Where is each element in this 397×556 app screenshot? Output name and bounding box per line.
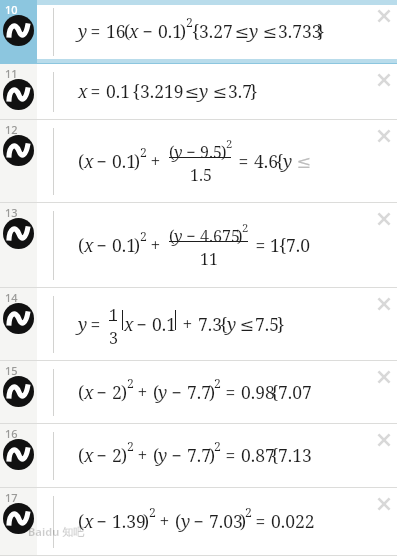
staticText: 7.7 (187, 380, 211, 404)
staticText: Baidu 知吧 (28, 524, 85, 539)
button[interactable] (0, 488, 37, 556)
button[interactable]: Toggle graph visibility (3, 376, 34, 407)
staticText: 7.13 (278, 443, 312, 467)
staticText: 3.733 (278, 19, 322, 43)
button[interactable] (0, 288, 37, 361)
staticText: ) (209, 443, 216, 467)
staticText: 0.1 (112, 149, 136, 173)
button[interactable]: Toggle graph visibility (3, 15, 34, 46)
staticText: 2 (242, 220, 249, 235)
button[interactable] (0, 120, 37, 203)
staticText: = (221, 443, 240, 467)
button[interactable] (0, 361, 37, 424)
staticText: x (78, 79, 88, 103)
button[interactable]: Toggle graph visibility (3, 503, 34, 534)
button[interactable] (0, 203, 397, 288)
staticText: x (84, 149, 94, 173)
staticText: 7.03 (209, 509, 243, 533)
staticText: ( (78, 149, 85, 173)
staticText: 2 (245, 504, 252, 521)
staticText: ( (78, 443, 85, 467)
button[interactable]: Toggle graph visibility (3, 303, 34, 334)
staticText: 17 (5, 490, 18, 505)
staticText: 0.1 (112, 233, 136, 257)
staticText: 2 (214, 438, 221, 455)
staticText: 1 (109, 304, 118, 326)
staticText: y (181, 509, 191, 533)
staticText: 4.6 (254, 149, 278, 173)
staticText: = (234, 149, 253, 173)
staticText: 1.5 (190, 164, 213, 186)
staticText: x (84, 233, 94, 257)
button[interactable] (0, 424, 37, 488)
button[interactable] (0, 64, 397, 120)
button[interactable] (0, 120, 397, 203)
staticText: 7.5 (255, 312, 279, 336)
staticText: ( (78, 509, 85, 533)
staticText: ) (209, 380, 216, 404)
staticText: y (158, 443, 168, 467)
staticText: 2 (127, 375, 134, 392)
staticText: ) (237, 225, 243, 247)
staticText: ( (175, 509, 182, 533)
staticText: ) (221, 141, 227, 163)
button[interactable]: Toggle graph visibility (3, 218, 34, 249)
staticText: = (251, 233, 270, 257)
staticText: 16 (106, 19, 126, 43)
button[interactable]: Delete expression (374, 126, 394, 146)
other: Toggle graph visibility (3, 79, 34, 110)
staticText: 1.39 (112, 509, 146, 533)
staticText: { (128, 79, 141, 103)
button[interactable] (0, 0, 397, 64)
button[interactable]: Delete expression (374, 6, 394, 26)
button[interactable]: Toggle graph visibility (3, 135, 34, 166)
button[interactable]: Delete expression (374, 294, 394, 314)
staticText: 7.07 (278, 380, 312, 404)
button[interactable] (0, 64, 37, 120)
staticText: y (249, 19, 259, 43)
button[interactable]: Delete expression (374, 209, 394, 229)
staticText: } (277, 312, 285, 336)
button[interactable] (0, 0, 37, 64)
staticText: − (167, 443, 187, 467)
button[interactable]: Toggle graph visibility (3, 439, 34, 470)
staticText: 0.1 (158, 19, 182, 43)
staticText: 2 (127, 438, 134, 455)
staticText: { (276, 149, 284, 173)
button[interactable]: Delete expression (374, 430, 394, 450)
staticText: 3.219 (140, 79, 184, 103)
staticText: 3.27 (199, 19, 233, 43)
button[interactable] (0, 203, 37, 288)
button[interactable] (0, 424, 397, 488)
staticText: } (250, 79, 258, 103)
staticText: 0.87 (241, 443, 275, 467)
button[interactable] (0, 288, 397, 361)
staticText: ( (78, 233, 85, 257)
staticText: 13 (5, 205, 18, 220)
button[interactable]: Delete expression (374, 70, 394, 90)
staticText: y (78, 312, 88, 336)
staticText: = (86, 312, 105, 336)
button[interactable]: Delete expression (374, 367, 394, 387)
staticText: 12 (5, 122, 18, 137)
staticText: ( (169, 225, 175, 247)
staticText: 14 (5, 290, 18, 305)
staticText: 9.5 (200, 141, 223, 163)
staticText: ) (134, 233, 141, 257)
staticText: ≤ (235, 312, 259, 336)
staticText: − (92, 380, 112, 404)
button[interactable]: Toggle graph visibility (3, 79, 34, 110)
staticText: ) (121, 380, 128, 404)
staticText: ( (169, 141, 175, 163)
button[interactable] (0, 361, 397, 424)
staticText: − (138, 19, 158, 43)
button[interactable] (0, 488, 397, 556)
staticText: 3 (109, 327, 118, 349)
staticText: ≤ (180, 79, 204, 103)
staticText: { (271, 380, 279, 404)
staticText: + (146, 149, 165, 173)
button[interactable]: Delete expression (374, 494, 394, 514)
staticText: { (220, 312, 228, 336)
staticText: ) (240, 509, 247, 533)
staticText: − (92, 233, 112, 257)
